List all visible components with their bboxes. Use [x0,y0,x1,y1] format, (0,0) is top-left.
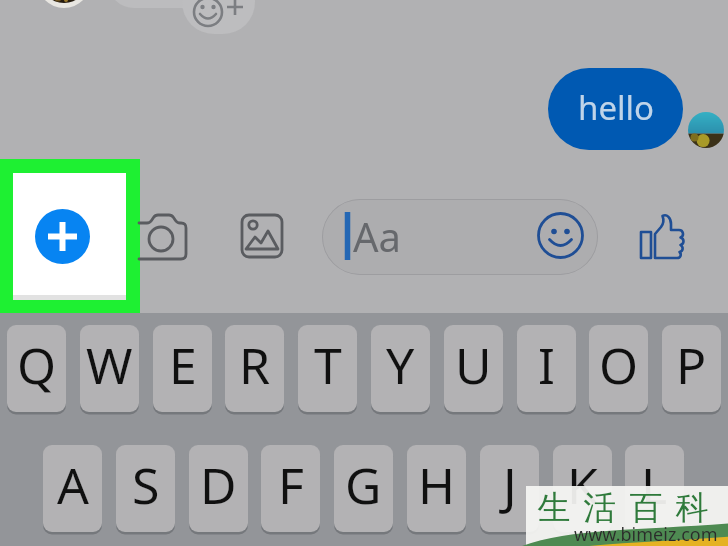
button[interactable]: L [625,445,684,532]
staticText: G [345,451,382,519]
button[interactable]: Gallery [240,213,285,260]
staticText: www.bimeiz.com [574,522,718,546]
staticText: S [132,451,160,519]
button[interactable]: Send like [640,211,688,259]
button[interactable]: F [261,445,320,532]
button[interactable]: Add reaction [182,0,255,34]
staticText: W [86,331,133,399]
button[interactable]: D [189,445,248,532]
button[interactable]: More actions [35,209,90,264]
button[interactable]: T [298,325,357,412]
staticText: L [641,451,668,519]
staticText: Q [17,331,57,399]
button[interactable]: A [43,445,102,532]
staticText: F [278,451,304,519]
button[interactable]: I [517,325,576,412]
button[interactable]: Q [7,325,66,412]
staticText: J [503,451,517,519]
staticText: Aa [353,209,401,263]
button[interactable]: J [480,445,539,532]
button[interactable]: E [153,325,212,412]
button[interactable]: Camera [139,215,188,261]
staticText: T [314,331,342,399]
staticText: I [538,331,555,399]
staticText: U [455,331,492,399]
button[interactable]: Emoji [537,212,584,259]
staticText: E [169,331,197,399]
staticText: D [200,451,237,519]
staticText: P [676,331,707,399]
button[interactable]: S [116,445,175,532]
button[interactable]: hello [548,68,683,150]
button[interactable]: P [662,325,721,412]
staticText: K [567,451,598,519]
staticText: Y [386,331,415,399]
staticText: R [239,331,271,399]
staticText: A [57,451,89,519]
button[interactable]: Y [371,325,430,412]
staticText: hello [578,85,654,130]
button[interactable]: W [80,325,139,412]
button[interactable]: G [334,445,393,532]
button[interactable]: H [407,445,466,532]
staticText: 生活百科 [531,487,715,529]
button[interactable]: R [225,325,284,412]
button[interactable]: K [553,445,612,532]
staticText: H [418,451,456,519]
button[interactable]: O [589,325,648,412]
button[interactable]: U [444,325,503,412]
staticText: O [599,331,639,399]
button[interactable]: Aa [322,199,598,275]
